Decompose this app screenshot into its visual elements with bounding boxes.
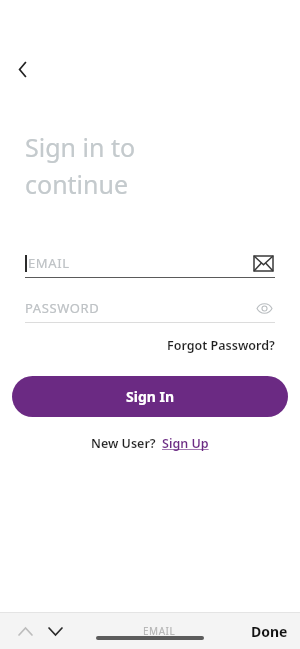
button[interactable]: Done bbox=[251, 622, 288, 641]
button[interactable]: Next field bbox=[42, 618, 68, 644]
staticText: Forgot Password? bbox=[167, 337, 275, 354]
staticText: PASSWORD bbox=[25, 299, 100, 317]
staticText: Done bbox=[251, 622, 288, 641]
button[interactable]: Sign Up bbox=[162, 435, 209, 452]
staticText: New User? bbox=[91, 435, 156, 452]
button[interactable]: EMAIL bbox=[25, 249, 275, 277]
staticText: EMAIL bbox=[28, 254, 70, 272]
button[interactable]: Email bbox=[251, 251, 275, 275]
button[interactable]: Back bbox=[6, 52, 40, 86]
staticText: Sign in to bbox=[25, 130, 136, 164]
button[interactable]: Previous field bbox=[12, 618, 38, 644]
staticText: continue bbox=[25, 167, 129, 201]
button[interactable]: PASSWORD bbox=[25, 294, 275, 322]
button[interactable]: Sign In bbox=[12, 376, 288, 417]
staticText: Sign Up bbox=[162, 435, 209, 452]
button[interactable]: Forgot Password? bbox=[167, 337, 275, 354]
staticText: EMAIL bbox=[143, 624, 176, 638]
staticText: Sign In bbox=[126, 387, 175, 406]
button[interactable]: Show password bbox=[253, 297, 275, 319]
